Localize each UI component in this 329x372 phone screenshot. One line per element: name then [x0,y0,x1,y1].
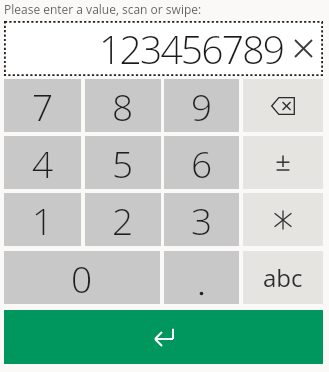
button[interactable] [294,39,313,58]
button[interactable] [164,251,239,304]
staticText: Please enter a value, scan or swipe: [4,1,202,17]
button[interactable]: 9 [164,79,239,132]
staticText: 0 [71,253,93,303]
button[interactable]: 1 [4,193,81,246]
button[interactable]: 5 [85,136,161,189]
button[interactable]: 123456789 [4,21,323,76]
staticText: 3 [191,195,213,245]
staticText: 8 [112,81,134,131]
button[interactable]: 4 [4,136,81,189]
staticText: 2 [112,195,134,245]
staticText: abc [263,261,303,294]
button[interactable] [4,310,323,364]
button[interactable]: 7 [4,79,81,132]
button[interactable]: abc [243,251,323,304]
button[interactable]: 8 [85,79,161,132]
staticText: 7 [32,81,54,131]
staticText: 9 [191,81,213,131]
staticText: 123456789 [99,22,284,75]
staticText: 5 [112,138,134,188]
staticText: 1 [32,195,54,245]
staticText: 4 [32,138,54,188]
button[interactable]: 0 [4,251,160,304]
button[interactable]: 3 [164,193,239,246]
button[interactable] [243,136,323,189]
button[interactable]: 6 [164,136,239,189]
button[interactable] [243,193,323,246]
button[interactable] [243,79,323,132]
staticText: 6 [191,138,213,188]
button[interactable]: 2 [85,193,161,246]
